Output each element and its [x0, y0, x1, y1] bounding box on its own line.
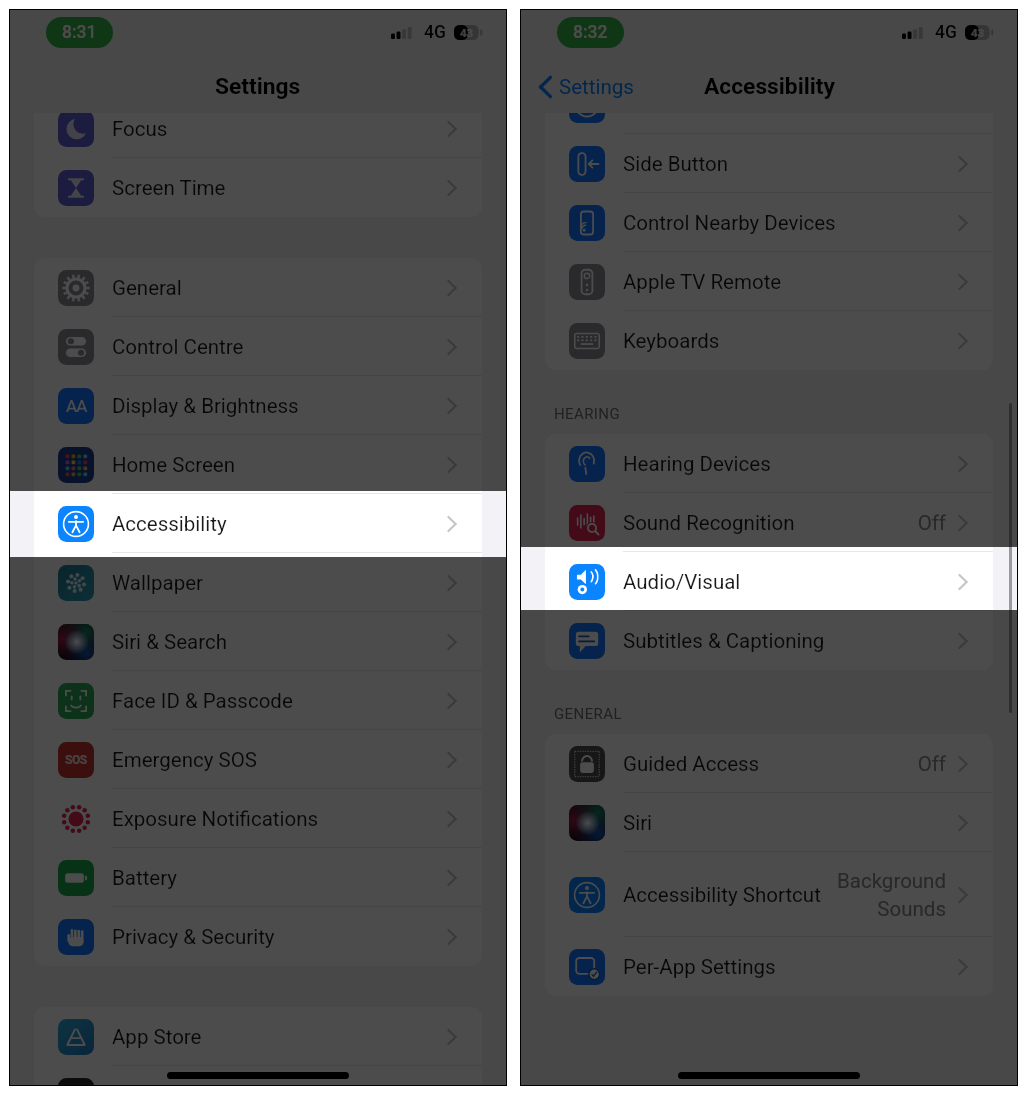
staticText: Face ID & Passcode	[112, 689, 293, 713]
staticText: Per-App Settings	[623, 955, 776, 979]
staticText: Side Button	[623, 152, 728, 176]
button[interactable]: Home Screen	[34, 435, 482, 494]
button[interactable]: Per-App Settings	[545, 937, 993, 996]
button[interactable]: AA	[34, 376, 482, 435]
button[interactable]: Battery	[34, 848, 482, 907]
button[interactable]: Guided Access	[545, 734, 993, 793]
staticText: Settings	[215, 73, 301, 100]
staticText: Battery	[112, 866, 178, 890]
button[interactable]: Apple TV Remote	[545, 252, 993, 311]
button[interactable]: Face ID & Passcode	[34, 671, 482, 730]
staticText: Screen Time	[112, 176, 226, 200]
staticText: Siri & Search	[112, 630, 227, 654]
button[interactable]: Privacy & Security	[34, 907, 482, 966]
staticText: Focus	[112, 117, 168, 141]
staticText: 4G	[424, 22, 446, 43]
staticText: HEARING	[554, 405, 621, 423]
staticText: Privacy & Security	[112, 925, 275, 949]
staticText: Emergency SOS	[112, 748, 257, 772]
button[interactable]: Focus	[34, 113, 482, 158]
staticText: Audio/Visual	[623, 570, 741, 594]
staticText: Control Nearby Devices	[623, 211, 836, 235]
button[interactable]: Control Nearby Devices	[545, 193, 993, 252]
button[interactable]: Sound Recognition	[545, 493, 993, 552]
staticText: SOS	[65, 753, 87, 767]
button[interactable]: Subtitles & Captioning	[545, 611, 993, 670]
staticText: Display & Brightness	[112, 394, 299, 418]
staticText: Off	[917, 752, 946, 776]
button[interactable]: Side Button	[545, 134, 993, 193]
button[interactable]: Control Centre	[34, 317, 482, 376]
staticText: Siri	[623, 811, 653, 835]
staticText: Background Sounds	[837, 869, 946, 921]
button[interactable]: Screen Time	[34, 158, 482, 217]
button[interactable]: Hearing Devices	[545, 434, 993, 493]
staticText: Touch	[623, 93, 680, 117]
staticText: Off	[917, 511, 946, 535]
staticText: General	[112, 276, 182, 300]
staticText: Apple TV Remote	[623, 270, 782, 294]
button[interactable]: Audio/Visual	[545, 552, 993, 611]
staticText: GENERAL	[554, 705, 622, 723]
button[interactable]: Accessibility	[34, 494, 482, 553]
button[interactable]: Siri	[545, 793, 993, 852]
staticText: 8:32	[573, 22, 608, 43]
staticText: Keyboards	[623, 329, 720, 353]
staticText: Hearing Devices	[623, 452, 771, 476]
staticText: 4G	[935, 22, 957, 43]
button[interactable]: Wallet & Apple Pay	[34, 1066, 482, 1085]
staticText: Sound Recognition	[623, 511, 795, 535]
staticText: Accessibility	[704, 73, 835, 100]
staticText: Control Centre	[112, 335, 244, 359]
button[interactable]: Exposure Notifications	[34, 789, 482, 848]
button[interactable]: Wallpaper	[34, 553, 482, 612]
staticText: 43	[460, 26, 474, 39]
staticText: AA	[66, 396, 87, 416]
staticText: Wallpaper	[112, 571, 203, 595]
staticText: 43	[971, 26, 985, 39]
button[interactable]: SOS	[34, 730, 482, 789]
staticText: Subtitles & Captioning	[623, 629, 825, 653]
staticText: Accessibility Shortcut	[623, 883, 821, 907]
staticText: 8:31	[62, 22, 97, 43]
button[interactable]: Touch	[545, 75, 993, 134]
button[interactable]: Siri & Search	[34, 612, 482, 671]
staticText: Home Screen	[112, 453, 235, 477]
button[interactable]: Keyboards	[545, 311, 993, 370]
staticText: Guided Access	[623, 752, 760, 776]
staticText: Accessibility	[112, 512, 227, 536]
staticText: Settings	[559, 75, 634, 99]
staticText: App Store	[112, 1025, 202, 1049]
button[interactable]: Back to Settings	[539, 75, 640, 99]
button[interactable]: App Store	[34, 1007, 482, 1066]
button[interactable]: General	[34, 258, 482, 317]
button[interactable]: Accessibility Shortcut	[545, 852, 993, 937]
staticText: Exposure Notifications	[112, 807, 319, 831]
